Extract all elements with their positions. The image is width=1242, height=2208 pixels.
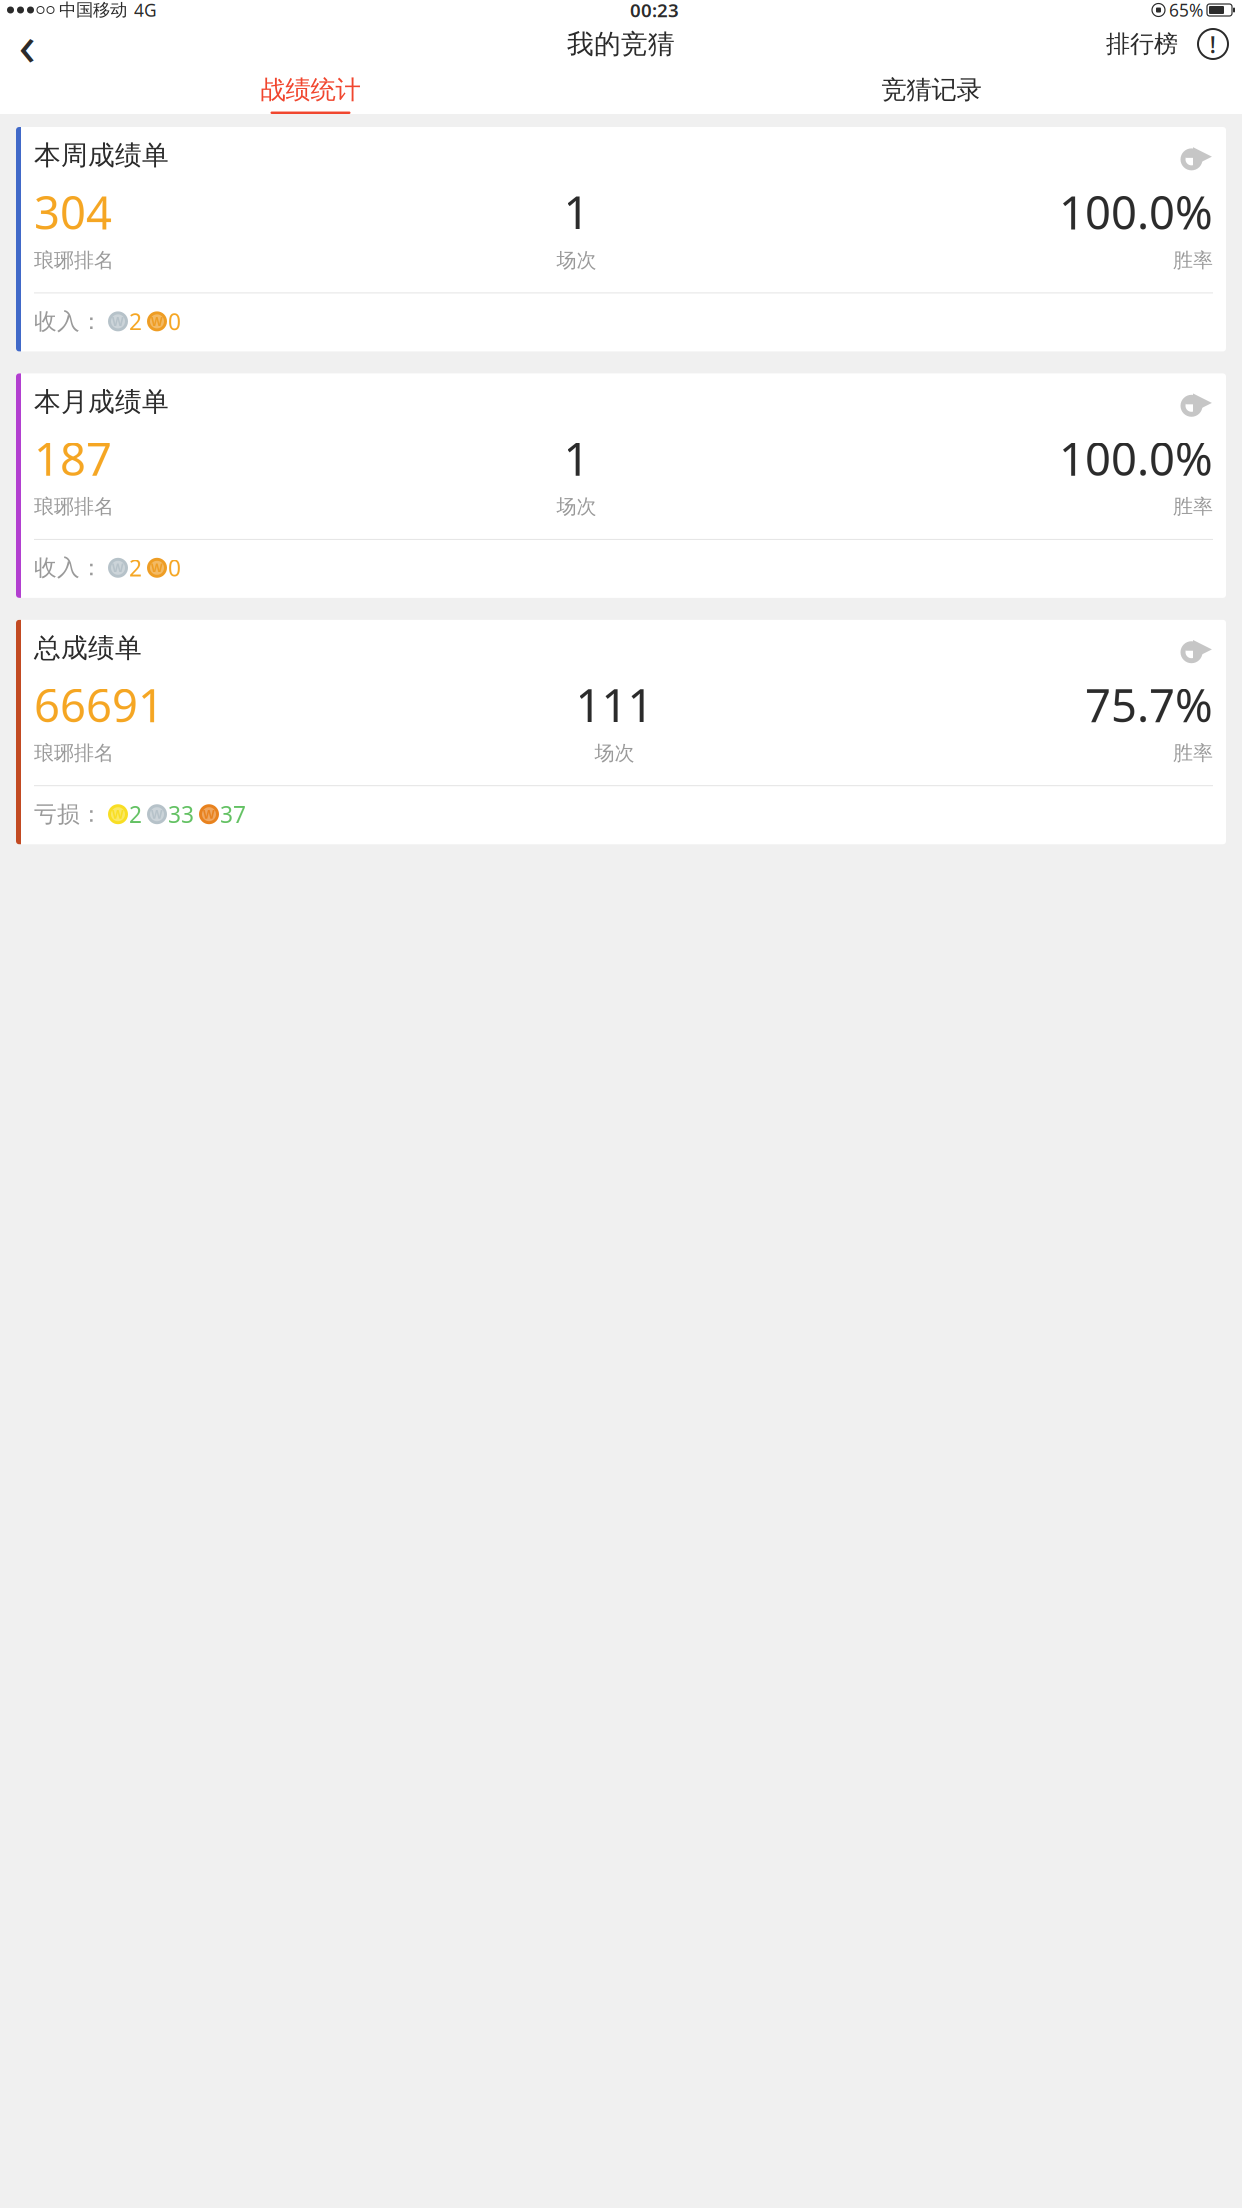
staticText: 37 — [220, 799, 246, 829]
staticText: ▶ — [1192, 633, 1211, 662]
staticText: 304 — [34, 182, 112, 242]
staticText: 战绩统计 — [260, 74, 360, 105]
staticText: 65% — [1169, 0, 1203, 21]
staticText: ▶ — [1192, 140, 1211, 169]
staticText: 4G — [134, 0, 157, 21]
button[interactable]: 返回 — [0, 22, 54, 66]
staticText: 本月成绩单 — [34, 385, 169, 418]
staticText: 75.7% — [1085, 675, 1213, 735]
staticText: 场次 — [556, 494, 596, 519]
button[interactable]: 战绩统计 — [0, 68, 621, 114]
staticText: 0 — [168, 306, 181, 336]
staticText: ‹ — [18, 7, 35, 81]
staticText: 胜率 — [1173, 741, 1213, 765]
staticText: W — [151, 313, 163, 329]
staticText: 187 — [34, 428, 112, 488]
staticText: 1 — [563, 182, 589, 242]
staticText: 100.0% — [1059, 428, 1213, 488]
staticText: 收入： — [34, 307, 103, 335]
staticText: 胜率 — [1173, 248, 1213, 273]
staticText: ▶ — [1192, 386, 1211, 415]
button[interactable]: 本月成绩单 — [16, 373, 1226, 598]
staticText: 琅琊排名 — [34, 741, 114, 765]
staticText: 2 — [129, 799, 142, 829]
staticText: 1 — [563, 428, 589, 488]
staticText: 0 — [168, 553, 181, 583]
staticText: 100.0% — [1059, 182, 1213, 242]
staticText: 66691 — [34, 675, 164, 735]
button[interactable]: 总成绩单 — [16, 620, 1226, 844]
staticText: 竞猜记录 — [881, 74, 981, 105]
staticText: 本周成绩单 — [34, 139, 169, 172]
staticText: 2 — [129, 306, 142, 336]
staticText: W — [203, 806, 215, 822]
staticText: W — [112, 313, 124, 329]
staticText: W — [151, 806, 163, 822]
button[interactable]: 排行榜 — [1100, 22, 1184, 66]
staticText: ! — [1209, 28, 1216, 60]
staticText: 2 — [129, 553, 142, 583]
button[interactable]: 规则说明 — [1184, 22, 1242, 66]
staticText: 亏损： — [34, 800, 103, 828]
staticText: 场次 — [556, 248, 596, 273]
staticText: 33 — [168, 799, 194, 829]
staticText: 我的竞猜 — [567, 28, 675, 60]
staticText: 收入： — [34, 554, 103, 582]
staticText: 总成绩单 — [34, 632, 142, 665]
button[interactable]: 本周成绩单 — [16, 127, 1226, 351]
staticText: W — [112, 806, 124, 822]
staticText: 琅琊排名 — [34, 494, 114, 519]
staticText: 排行榜 — [1106, 29, 1178, 59]
staticText: 中国移动 — [59, 0, 127, 21]
staticText: 场次 — [594, 741, 634, 765]
staticText: 00:23 — [630, 0, 679, 22]
staticText: W — [151, 560, 163, 576]
staticText: 琅琊排名 — [34, 248, 114, 273]
staticText: 胜率 — [1173, 494, 1213, 519]
staticText: 111 — [575, 675, 653, 735]
staticText: W — [112, 560, 124, 576]
button[interactable]: 竞猜记录 — [621, 68, 1242, 114]
